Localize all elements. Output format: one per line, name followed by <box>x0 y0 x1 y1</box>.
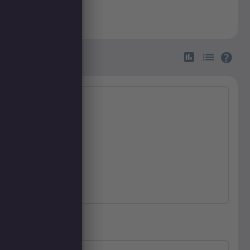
button[interactable]: List view <box>203 52 214 62</box>
button[interactable] <box>12 240 229 250</box>
button[interactable]: Charts <box>184 52 194 62</box>
staticText: ? <box>224 51 229 62</box>
button[interactable] <box>0 0 238 39</box>
button[interactable] <box>12 86 229 204</box>
button[interactable]: Help <box>221 52 232 63</box>
